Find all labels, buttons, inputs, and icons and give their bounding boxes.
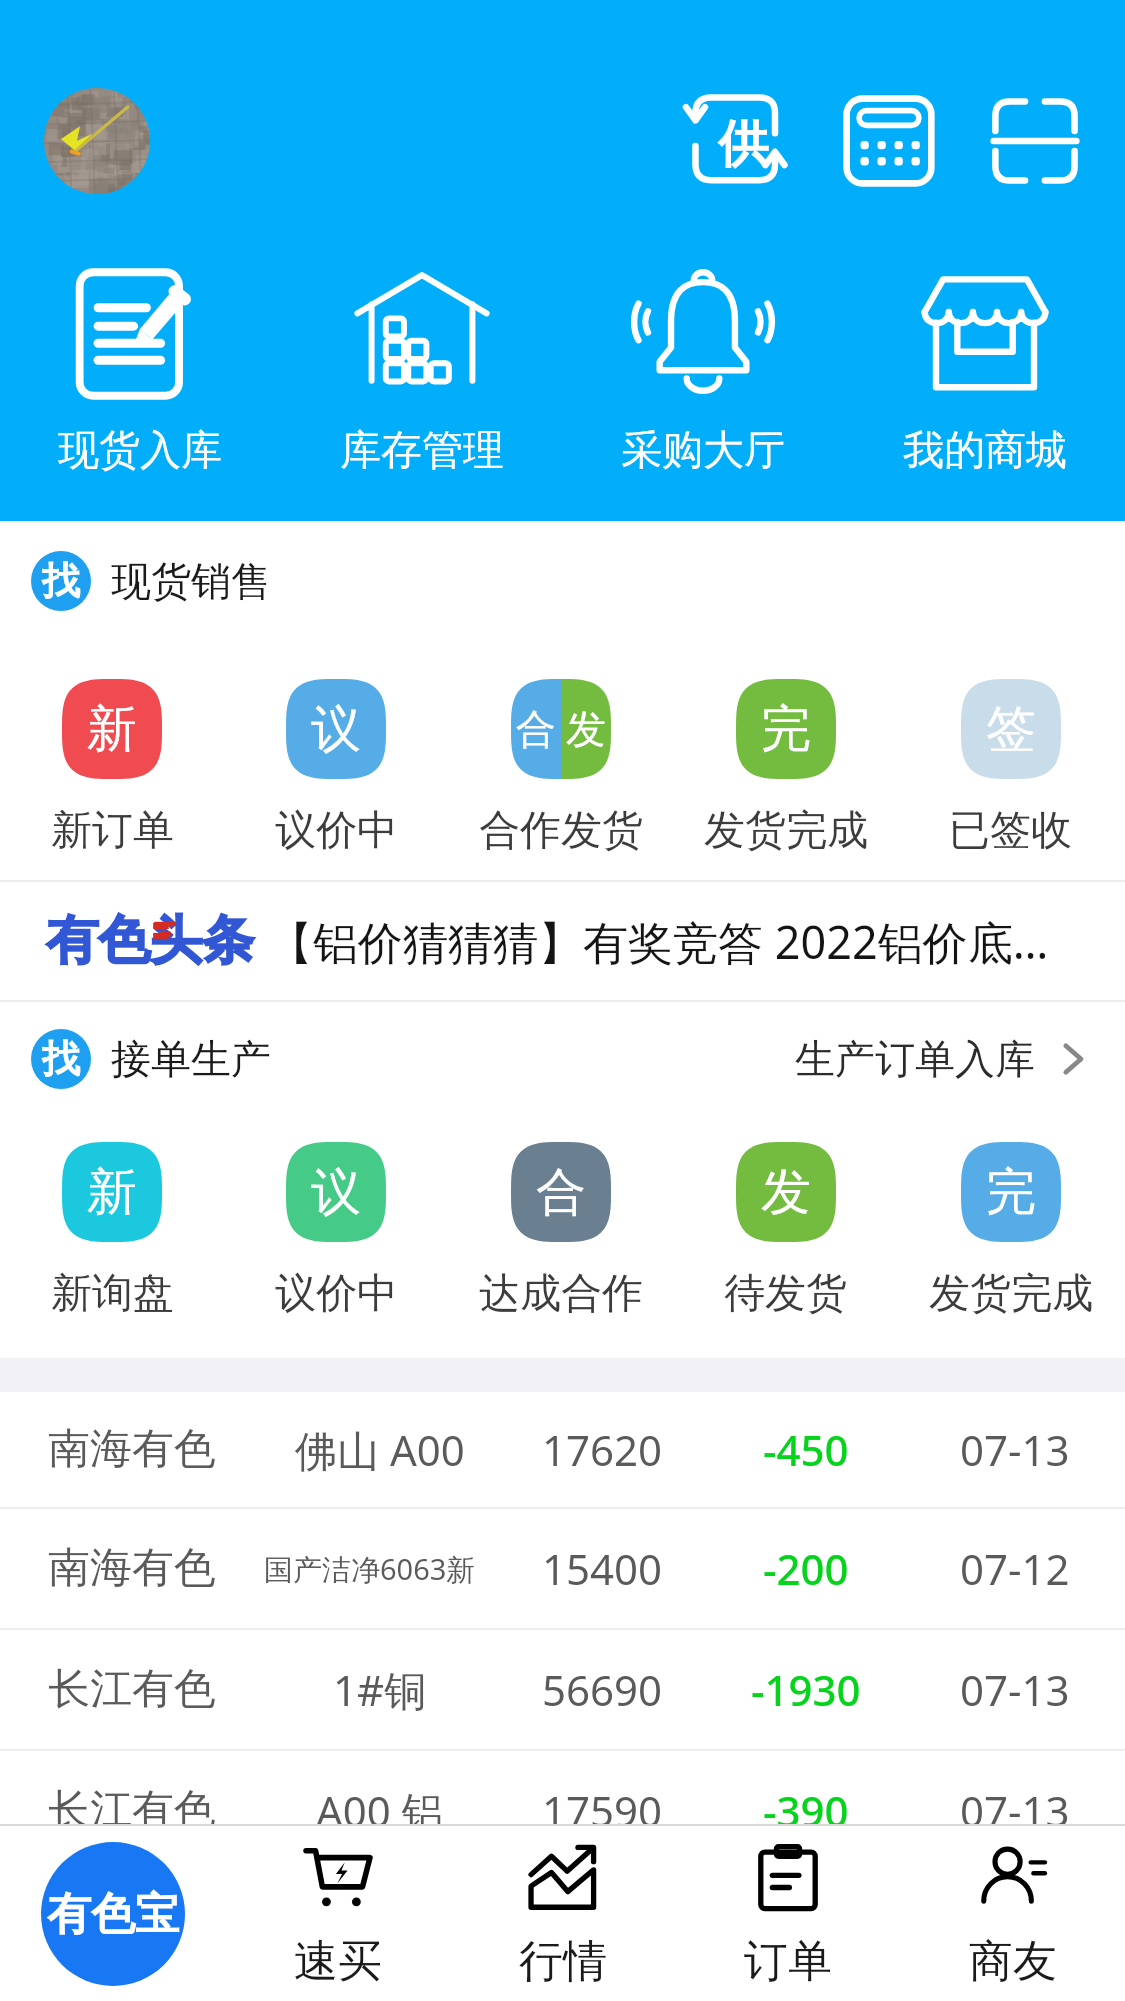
staticText: 56690	[542, 1661, 663, 1718]
staticText: 07-13	[960, 1661, 1070, 1718]
staticText: 现货销售	[111, 556, 271, 606]
button[interactable]: 采购大厅	[585, 263, 821, 477]
staticText: 【铝价猜猜猜】有奖竞答 2022铝价底…	[268, 911, 1049, 972]
staticText: 签	[986, 698, 1036, 761]
staticText: 南海有色	[48, 1423, 216, 1476]
button[interactable]: Profile	[44, 88, 150, 194]
button[interactable]: 完	[898, 1142, 1123, 1320]
staticText: 合	[536, 1161, 586, 1224]
button[interactable]: 合	[448, 679, 673, 857]
staticText: 接单生产	[111, 1034, 271, 1084]
staticText: 速买	[294, 1934, 382, 1989]
button[interactable]: 发	[673, 1142, 898, 1320]
staticText: 长江有色	[48, 1784, 216, 1837]
button[interactable]: 速买	[225, 1838, 450, 1989]
staticText: 订单	[744, 1934, 832, 1989]
staticText: 南海有色	[48, 1542, 216, 1595]
staticText: 有色头条	[46, 908, 254, 974]
staticText: 发	[566, 704, 606, 754]
button[interactable]: 议	[224, 1142, 448, 1320]
staticText: 新询盘	[51, 1268, 174, 1320]
button[interactable]: 现货入库	[22, 263, 258, 477]
staticText: 发	[761, 1161, 811, 1224]
staticText: 库存管理	[340, 425, 504, 477]
staticText: 议	[311, 698, 361, 761]
button[interactable]: 商友	[900, 1838, 1125, 1989]
button[interactable]: 南海有色	[0, 1392, 1125, 1507]
staticText: -390	[763, 1782, 849, 1839]
button[interactable]: 完	[673, 679, 898, 857]
staticText: 发货完成	[929, 1268, 1093, 1320]
staticText: 新	[87, 698, 137, 761]
staticText: 议价中	[275, 805, 398, 857]
staticText: 1#铜	[333, 1661, 427, 1718]
button[interactable]: 行情	[450, 1838, 675, 1989]
staticText: 新	[87, 1161, 137, 1224]
staticText: 议价中	[275, 1268, 398, 1320]
staticText: 完	[986, 1161, 1036, 1224]
staticText: 现货入库	[58, 425, 222, 477]
staticText: 长江有色	[48, 1663, 216, 1716]
button[interactable]: Calculator	[831, 83, 947, 199]
button[interactable]: 生产订单入库	[795, 1034, 1093, 1084]
staticText: 行情	[519, 1934, 607, 1989]
button[interactable]: Scan	[977, 83, 1093, 199]
staticText: 17590	[542, 1782, 663, 1839]
staticText: 新订单	[51, 805, 174, 857]
staticText: 完	[761, 698, 811, 761]
staticText: 有色宝	[47, 1887, 179, 1942]
staticText: 07-13	[960, 1421, 1070, 1478]
staticText: 找	[42, 557, 80, 605]
button[interactable]: 合	[448, 1142, 673, 1320]
button[interactable]: 供应 Supply	[675, 83, 791, 199]
staticText: 发货完成	[704, 805, 868, 857]
staticText: -1930	[751, 1661, 861, 1718]
staticText: 议	[311, 1161, 361, 1224]
staticText: 佛山 A00	[295, 1421, 465, 1478]
button[interactable]: 有色宝	[41, 1842, 185, 1986]
staticText: 合	[516, 704, 556, 754]
staticText: 商友	[969, 1934, 1057, 1989]
staticText: 我的商城	[903, 425, 1067, 477]
button[interactable]: 长江有色	[0, 1751, 1125, 1870]
staticText: 07-12	[960, 1540, 1070, 1597]
staticText: 17620	[542, 1421, 663, 1478]
staticText: -450	[763, 1421, 849, 1478]
button[interactable]: 南海有色	[0, 1509, 1125, 1628]
staticText: 已签收	[949, 805, 1072, 857]
button[interactable]: 新	[0, 1142, 224, 1320]
staticText: 待发货	[724, 1268, 847, 1320]
button[interactable]: 长江有色	[0, 1630, 1125, 1749]
button[interactable]: 议	[224, 679, 448, 857]
button[interactable]: 订单	[675, 1838, 900, 1989]
staticText: 生产订单入库	[795, 1034, 1035, 1084]
staticText: 达成合作	[479, 1268, 643, 1320]
staticText: A00 铝	[316, 1782, 444, 1839]
staticText: 找	[42, 1035, 80, 1083]
staticText: 07-13	[960, 1782, 1070, 1839]
staticText: -200	[763, 1540, 849, 1597]
button[interactable]: 我的商城	[867, 263, 1103, 477]
staticText: 供	[718, 113, 768, 176]
staticText: 15400	[542, 1540, 663, 1597]
button[interactable]: 库存管理	[304, 263, 540, 477]
staticText: 合作发货	[479, 805, 643, 857]
button[interactable]: 签	[898, 679, 1123, 857]
button[interactable]: 有色头条	[46, 882, 1111, 1000]
button[interactable]: 新	[0, 679, 224, 857]
staticText: 采购大厅	[621, 425, 785, 477]
staticText: 国产洁净6063新料*	[264, 1549, 496, 1589]
